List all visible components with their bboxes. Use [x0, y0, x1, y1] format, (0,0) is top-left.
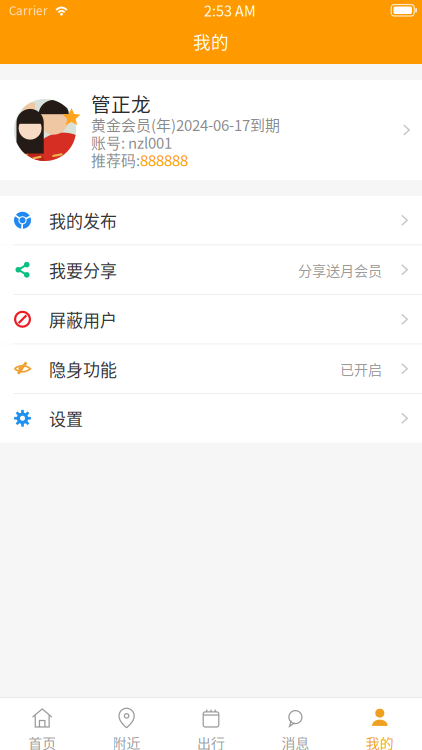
staticText: 首页 — [28, 732, 56, 750]
button[interactable]: 出行 — [169, 698, 253, 750]
button[interactable]: 我要分享 — [0, 245, 422, 294]
button[interactable]: 设置 — [0, 394, 422, 442]
staticText: 隐身功能 — [49, 356, 117, 381]
staticText: 我要分享 — [49, 257, 117, 282]
staticText: 888888 — [140, 149, 188, 171]
staticText: 我的 — [193, 28, 229, 54]
staticText: 推荐码: — [91, 149, 140, 171]
staticText: Carrier — [9, 2, 48, 19]
staticText: 我的 — [366, 732, 394, 750]
button[interactable]: 隐身功能 — [0, 344, 422, 393]
staticText: 附近 — [113, 732, 141, 750]
staticText: 消息 — [281, 732, 309, 750]
staticText: 我的发布 — [49, 208, 117, 232]
button[interactable]: 管正龙 — [0, 80, 422, 180]
button[interactable]: 屏蔽用户 — [0, 295, 422, 343]
button[interactable]: 我的发布 — [0, 196, 422, 244]
button[interactable]: 我的 — [338, 698, 422, 750]
staticText: 屏蔽用户 — [49, 307, 117, 331]
staticText: 分享送月会员 — [298, 259, 382, 280]
staticText: 设置 — [49, 406, 83, 430]
staticText: 账号: nzl001 — [91, 131, 172, 153]
staticText: 管正龙 — [91, 89, 151, 118]
button[interactable]: 消息 — [253, 698, 338, 750]
staticText: 已开启 — [340, 358, 382, 379]
button[interactable]: 附近 — [84, 698, 169, 750]
button[interactable]: 首页 — [0, 698, 84, 750]
staticText: 2:53 AM — [204, 0, 256, 21]
staticText: 出行 — [197, 732, 225, 750]
staticText: 黄金会员(年)2024-06-17到期 — [91, 114, 280, 135]
